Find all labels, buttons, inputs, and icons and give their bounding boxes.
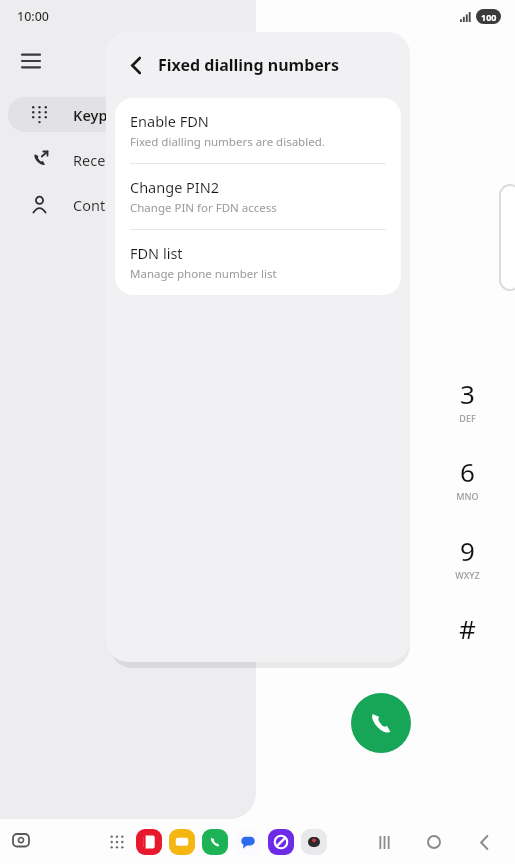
button[interactable]: Call bbox=[351, 693, 411, 753]
staticText: Keypad bbox=[73, 105, 126, 125]
staticText: 3 bbox=[460, 376, 475, 411]
staticText: Enable FDN bbox=[130, 111, 209, 131]
button[interactable]: App bbox=[202, 829, 228, 855]
staticText: # bbox=[459, 611, 476, 646]
staticText: Fixed dialling numbers are disabled. bbox=[130, 134, 325, 150]
button[interactable] bbox=[8, 97, 258, 132]
staticText: FDN list bbox=[130, 243, 183, 263]
staticText: MNO bbox=[456, 490, 479, 502]
staticText: WXYZ bbox=[455, 569, 480, 581]
button[interactable]: 3 bbox=[433, 370, 501, 430]
button[interactable]: Keypad bbox=[8, 97, 258, 132]
button[interactable]: Back bbox=[118, 47, 154, 83]
button[interactable]: 6 bbox=[433, 448, 501, 508]
button[interactable]: App bbox=[169, 829, 195, 855]
staticText: Contacts bbox=[73, 195, 133, 215]
button[interactable]: Menu bbox=[12, 42, 50, 80]
staticText: Change PIN2 bbox=[130, 177, 220, 197]
button[interactable]: Apps bbox=[103, 828, 131, 856]
staticText: 6 bbox=[460, 454, 475, 489]
staticText: Manage phone number list bbox=[130, 266, 277, 282]
staticText: Change PIN for FDN access bbox=[130, 200, 277, 216]
button[interactable]: Enable FDN bbox=[115, 98, 401, 163]
button[interactable]: App bbox=[136, 829, 162, 855]
button[interactable]: Contacts bbox=[8, 187, 258, 222]
button[interactable]: FDN list bbox=[115, 230, 401, 295]
button[interactable]: Back bbox=[467, 825, 501, 859]
button[interactable]: Recent bbox=[8, 142, 258, 177]
button[interactable]: # bbox=[433, 598, 501, 658]
button[interactable]: 9 bbox=[433, 527, 501, 587]
staticText: DEF bbox=[459, 412, 476, 424]
button[interactable]: App bbox=[268, 829, 294, 855]
button[interactable]: Screenshot bbox=[6, 827, 36, 857]
staticText: 100 bbox=[481, 11, 497, 23]
staticText: Recent bbox=[73, 150, 120, 170]
button[interactable]: Recents bbox=[367, 825, 401, 859]
button[interactable]: Home bbox=[417, 825, 451, 859]
button[interactable]: App bbox=[235, 829, 261, 855]
staticText: 9 bbox=[460, 533, 475, 568]
button[interactable]: Change PIN2 bbox=[115, 164, 401, 229]
staticText: 10:00 bbox=[17, 8, 50, 25]
staticText: Fixed dialling numbers bbox=[158, 54, 340, 76]
button[interactable]: App bbox=[301, 829, 327, 855]
